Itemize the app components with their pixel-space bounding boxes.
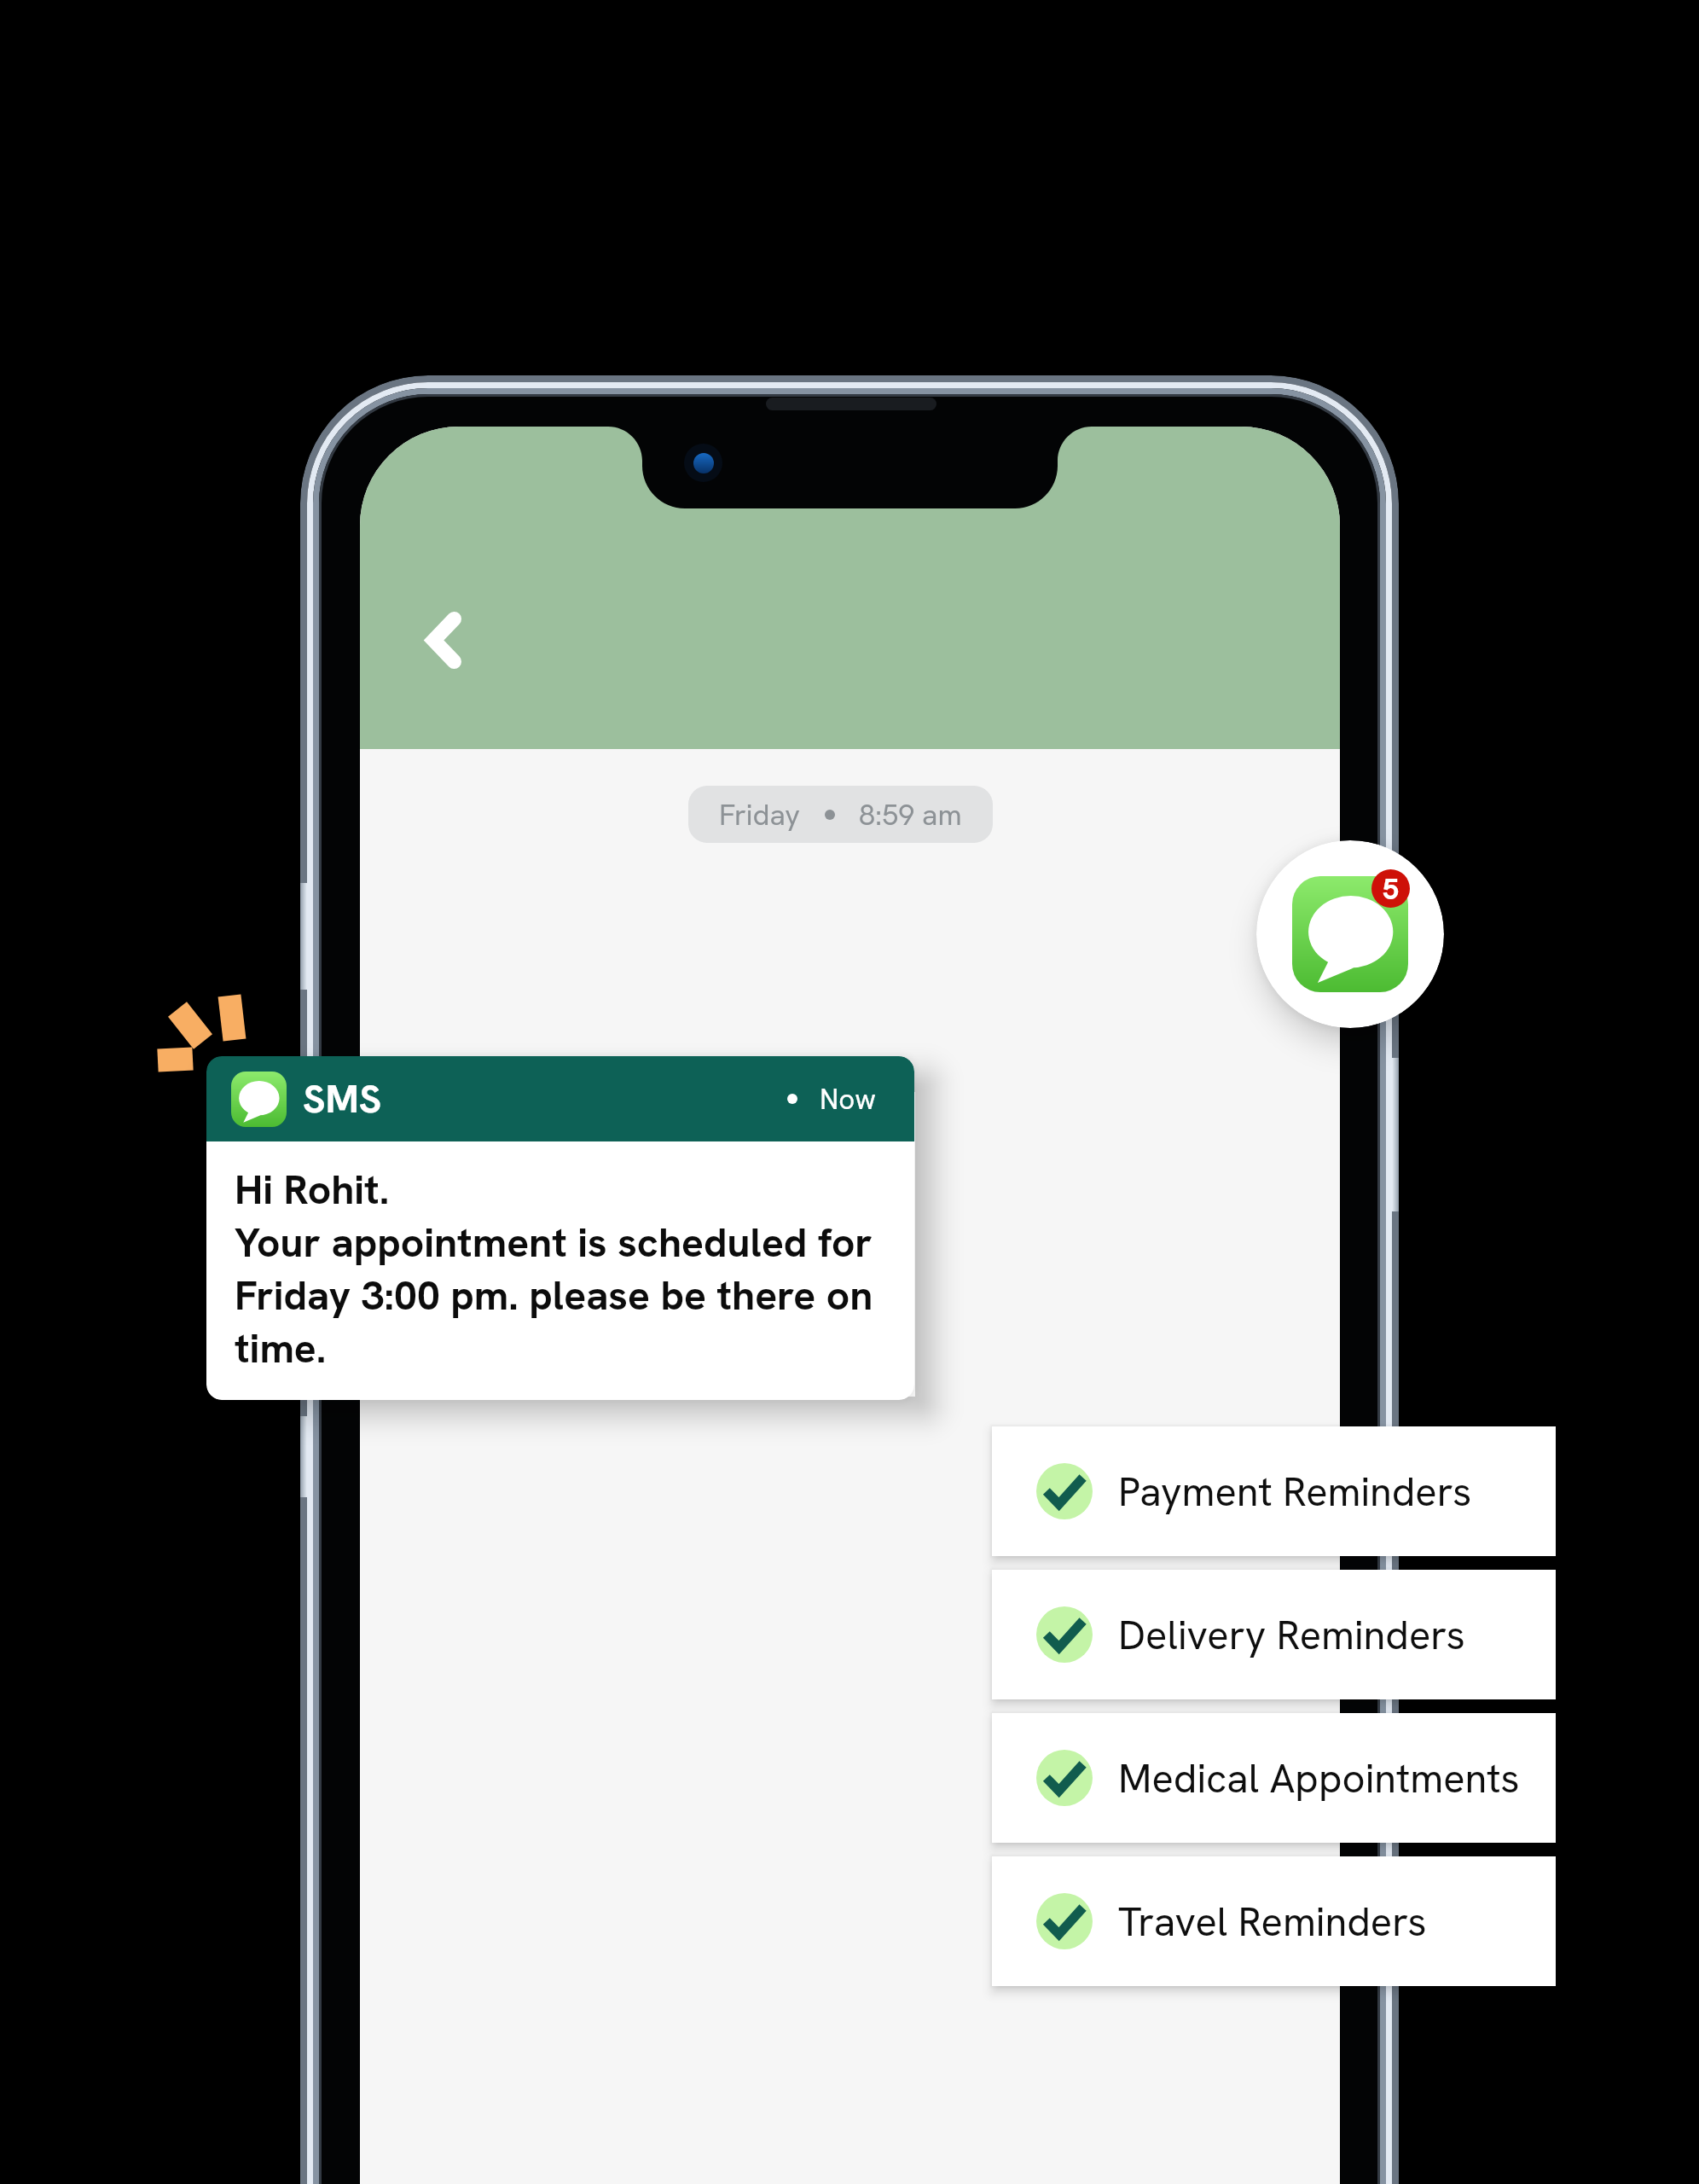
staticText: Now [820, 1081, 876, 1118]
button[interactable]: Travel Reminders [992, 1856, 1556, 1986]
staticText: Hi Rohit. Your appointment is scheduled … [235, 1163, 896, 1374]
staticText: Travel Reminders [1118, 1896, 1427, 1948]
button[interactable]: Delivery Reminders [992, 1570, 1556, 1699]
staticText: 8:59 am [859, 796, 962, 834]
staticText: Friday [719, 796, 801, 834]
button[interactable]: Payment Reminders [992, 1426, 1556, 1556]
staticText: Medical Appointments [1118, 1752, 1520, 1804]
staticText: Payment Reminders [1118, 1466, 1472, 1518]
staticText: 5 [1383, 870, 1400, 908]
staticText: SMS [303, 1073, 382, 1124]
staticText: Delivery Reminders [1118, 1609, 1465, 1661]
button[interactable]: Messages app [1256, 840, 1444, 1028]
button[interactable]: Back [384, 580, 503, 700]
button[interactable]: Medical Appointments [992, 1713, 1556, 1843]
